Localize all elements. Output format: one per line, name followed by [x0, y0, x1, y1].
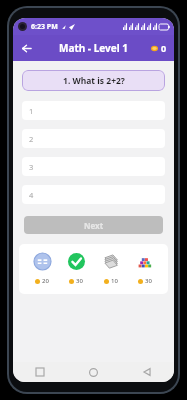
staticText: 1. What is 2+2?	[63, 75, 125, 87]
staticText: 30	[145, 277, 152, 285]
staticText: 4	[29, 190, 34, 200]
button[interactable]: 0	[151, 42, 167, 54]
button[interactable]: Blocks	[130, 248, 160, 285]
button[interactable]: Fifty	[27, 248, 57, 285]
staticText: 6:23 PM	[31, 22, 58, 32]
staticText: 30	[76, 277, 83, 285]
button[interactable]: Back	[13, 35, 39, 61]
staticText: 20	[42, 277, 49, 285]
button[interactable]: 3	[22, 157, 165, 176]
staticText: 3	[29, 162, 34, 172]
button[interactable]: 4	[22, 185, 165, 204]
staticText: 10	[111, 277, 118, 285]
button[interactable]: Back	[120, 362, 174, 382]
button[interactable]: 2	[22, 129, 165, 148]
button[interactable]: 1. What is 2+2?	[22, 70, 165, 91]
button[interactable]: Skip	[96, 248, 126, 285]
staticText: Next	[84, 220, 104, 231]
button[interactable]: Recent apps	[13, 362, 66, 382]
staticText: 1	[29, 106, 34, 116]
button[interactable]: Correct answer	[61, 248, 91, 285]
staticText: 2	[29, 134, 34, 144]
button[interactable]: Home	[66, 362, 120, 382]
staticText: Math - Level 1	[59, 41, 128, 55]
button[interactable]: Next	[24, 216, 163, 234]
staticText: 0	[161, 42, 167, 54]
